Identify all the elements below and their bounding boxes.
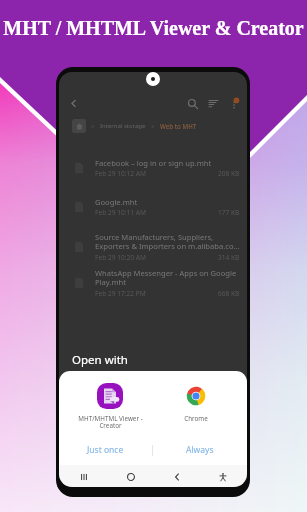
staticText: Just once (87, 444, 124, 456)
button[interactable]: Home (122, 468, 139, 485)
staticText: Always (186, 444, 214, 456)
button[interactable]: Recents (75, 468, 92, 485)
staticText: Feb 29 17:22 PM (95, 289, 146, 298)
staticText: Feb 29 10:11 AM (95, 208, 146, 217)
button[interactable]: Search (182, 93, 203, 114)
button[interactable]: Back (168, 468, 185, 485)
staticText: Open with (72, 352, 128, 368)
button[interactable]: WhatsApp Messenger - Apps on Google Play… (59, 267, 247, 299)
staticText: Internal storage (100, 122, 146, 130)
button[interactable]: Back (64, 94, 82, 112)
staticText: Chrome (184, 414, 208, 423)
staticText: 177 KB (218, 208, 240, 217)
staticText: Google.mht (95, 197, 138, 207)
staticText: Feb 29 10:20 AM (95, 253, 146, 262)
staticText: MHT/MHTML Viewer - Creator (78, 414, 143, 430)
staticText: WhatsApp Messenger - Apps on Google Play… (95, 268, 237, 288)
staticText: 314 KB (218, 253, 240, 262)
button[interactable]: MHT/MHTML Viewer - Creator (74, 383, 146, 430)
button[interactable]: Google.mht (59, 187, 247, 227)
button[interactable]: Chrome (160, 383, 232, 423)
button[interactable]: Source Manufacturers, Suppliers, Exporte… (59, 227, 247, 267)
button[interactable]: Sort (203, 93, 224, 114)
staticText: Source Manufacturers, Suppliers, Exporte… (95, 232, 240, 252)
staticText: 668 KB (218, 289, 240, 298)
staticText: MHT / MHTML Viewer & Creator (3, 17, 304, 39)
staticText: Facebook – log in or sign up.mht (95, 158, 212, 168)
button[interactable]: More options (224, 93, 245, 114)
button[interactable]: Just once (59, 444, 152, 456)
staticText: > (151, 122, 155, 131)
staticText: > (91, 122, 95, 131)
button[interactable]: Always (153, 444, 247, 456)
staticText: Web to MHT (160, 122, 197, 130)
staticText: Feb 29 10:12 AM (95, 169, 146, 178)
button[interactable]: Accessibility (214, 468, 231, 485)
button[interactable]: Facebook – log in or sign up.mht (59, 149, 247, 187)
staticText: 208 KB (218, 169, 240, 178)
